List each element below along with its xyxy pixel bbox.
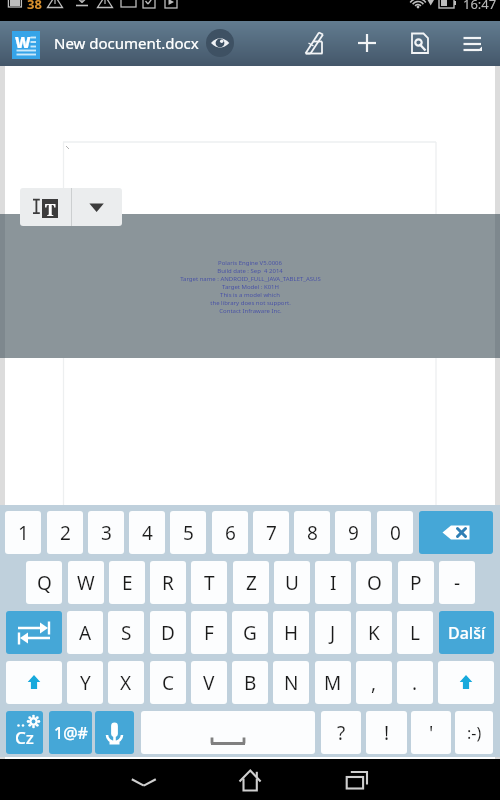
button[interactable]: P	[398, 561, 434, 604]
staticText: Target Model : K01H	[222, 283, 279, 291]
staticText: 2	[60, 520, 71, 546]
staticText: 8	[307, 520, 318, 546]
button[interactable]: E	[109, 561, 145, 604]
button[interactable]: ,	[356, 661, 392, 704]
staticText: X	[120, 670, 132, 696]
staticText: Polaris Engine V5.0006	[218, 259, 282, 267]
button[interactable]: I	[315, 561, 351, 604]
staticText: 5	[183, 520, 194, 546]
button[interactable]: More options	[72, 188, 122, 226]
button[interactable]: Insert	[353, 29, 381, 59]
button[interactable]: W	[68, 561, 104, 604]
button[interactable]: Q	[26, 561, 62, 604]
button[interactable]: 1@#	[49, 711, 92, 754]
button[interactable]: R	[150, 561, 186, 604]
button[interactable]: Tools	[406, 29, 434, 59]
button[interactable]: :-)	[455, 711, 493, 754]
staticText: .	[412, 670, 418, 696]
button[interactable]: shiftL	[6, 661, 62, 704]
staticText: H	[284, 620, 299, 646]
button[interactable]: -	[439, 561, 475, 604]
staticText: 4	[142, 520, 153, 546]
button[interactable]: Back	[119, 759, 169, 800]
staticText: Y	[80, 670, 91, 696]
staticText: V	[203, 670, 215, 696]
button[interactable]: M	[315, 661, 351, 704]
button[interactable]: !	[366, 711, 407, 754]
button[interactable]: A	[67, 611, 103, 654]
staticText: ?	[337, 720, 346, 746]
button[interactable]: O	[356, 561, 392, 604]
button[interactable]: H	[273, 611, 309, 654]
staticText: W	[77, 570, 95, 596]
staticText: 38	[27, 0, 42, 13]
button[interactable]: 6	[212, 511, 248, 554]
button[interactable]: K	[356, 611, 392, 654]
button[interactable]: 0	[377, 511, 413, 554]
button[interactable]: .	[397, 661, 433, 704]
button[interactable]: V	[191, 661, 227, 704]
button[interactable]: B	[232, 661, 268, 704]
button[interactable]: 2	[47, 511, 83, 554]
button[interactable]: shiftR	[438, 661, 494, 704]
staticText: L	[410, 620, 420, 646]
button[interactable]: tab	[6, 611, 62, 654]
staticText: 7	[266, 520, 277, 546]
button[interactable]: N	[273, 661, 309, 704]
staticText: '	[429, 720, 434, 746]
button[interactable]: Preview	[206, 29, 234, 57]
staticText: K	[368, 620, 380, 646]
staticText: E	[122, 570, 133, 596]
staticText: Build date : Sep 4 2014	[217, 267, 283, 275]
button[interactable]: 9	[335, 511, 371, 554]
button[interactable]: L	[397, 611, 433, 654]
button[interactable]: F	[191, 611, 227, 654]
button[interactable]: Insert text	[20, 188, 71, 226]
button[interactable]: bksp	[419, 511, 493, 554]
button[interactable]: Recent apps	[331, 759, 381, 800]
button[interactable]: S	[108, 611, 144, 654]
button[interactable]: C	[150, 661, 186, 704]
staticText: -	[454, 570, 461, 596]
staticText: P	[410, 570, 422, 596]
button[interactable]: X	[108, 661, 144, 704]
staticText: !	[384, 720, 390, 746]
staticText: Další	[448, 622, 486, 644]
button[interactable]: '	[411, 711, 451, 754]
button[interactable]: New document.docx	[54, 33, 199, 53]
button[interactable]: Další	[439, 611, 494, 654]
button[interactable]: D	[150, 611, 186, 654]
button[interactable]: 1	[5, 511, 41, 554]
button[interactable]: 4	[129, 511, 165, 554]
button[interactable]: Y	[67, 661, 103, 704]
button[interactable]: 8	[294, 511, 330, 554]
staticText: This is a model which	[220, 291, 280, 299]
button[interactable]: mic	[95, 711, 134, 754]
staticText: 0	[390, 520, 401, 546]
button[interactable]: T	[191, 561, 227, 604]
button[interactable]: Document type	[12, 31, 40, 59]
staticText: Cz	[15, 726, 34, 749]
button[interactable]: ?	[321, 711, 361, 754]
button[interactable]: Cz	[6, 711, 43, 754]
button[interactable]: G	[232, 611, 268, 654]
staticText: T	[204, 570, 215, 596]
button[interactable]: U	[274, 561, 310, 604]
staticText: 6	[225, 520, 236, 546]
staticText: D	[161, 620, 175, 646]
button[interactable]: Home	[225, 759, 275, 800]
staticText: R	[162, 570, 174, 596]
button[interactable]: space	[141, 711, 315, 754]
staticText: Q	[37, 570, 52, 596]
button[interactable]: Edit	[300, 29, 328, 59]
button[interactable]: Menu	[459, 29, 487, 59]
staticText: J	[330, 620, 336, 646]
button[interactable]: 7	[253, 511, 289, 554]
button[interactable]: J	[315, 611, 351, 654]
button[interactable]: 5	[170, 511, 206, 554]
staticText: A	[79, 620, 92, 646]
button[interactable]: 3	[88, 511, 124, 554]
staticText: N	[284, 670, 299, 696]
button[interactable]: Z	[233, 561, 269, 604]
staticText: S	[121, 620, 132, 646]
